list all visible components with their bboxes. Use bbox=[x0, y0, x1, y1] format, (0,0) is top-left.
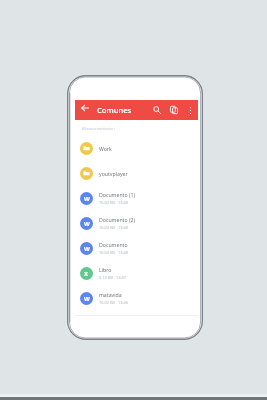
staticText: W bbox=[84, 245, 90, 253]
staticText: Almacenamiento › bbox=[82, 126, 116, 131]
staticText: Comunes bbox=[97, 105, 132, 115]
staticText: Documento (2) bbox=[99, 216, 136, 223]
staticText: 13:46 bbox=[118, 300, 128, 305]
staticText: 16.02 KB bbox=[99, 200, 115, 205]
button[interactable]: Search bbox=[149, 102, 165, 118]
staticText: Libro bbox=[99, 266, 112, 273]
button[interactable]: Navigate up bbox=[77, 100, 93, 116]
staticText: 13:48 bbox=[118, 200, 128, 205]
staticText: W bbox=[84, 195, 90, 203]
button[interactable]: W bbox=[75, 186, 198, 211]
button[interactable]: Select all bbox=[166, 102, 182, 118]
staticText: 16.02 KB bbox=[99, 250, 115, 255]
button[interactable]: More options bbox=[184, 104, 196, 116]
staticText: matavida bbox=[99, 291, 122, 298]
staticText: Work bbox=[99, 145, 112, 152]
staticText: 13:48 bbox=[118, 225, 128, 230]
staticText: Documento (1) bbox=[99, 191, 136, 198]
button[interactable]: W bbox=[75, 211, 198, 236]
button[interactable]: W bbox=[75, 236, 198, 261]
staticText: 13:47 bbox=[116, 275, 126, 280]
staticText: W bbox=[84, 220, 90, 228]
staticText: W bbox=[84, 295, 90, 303]
button[interactable]: Work bbox=[75, 136, 198, 161]
button[interactable]: youtvplayer bbox=[75, 161, 198, 186]
staticText: 9.12 KB bbox=[99, 275, 113, 280]
staticText: youtvplayer bbox=[99, 170, 128, 177]
staticText: 13:48 bbox=[118, 250, 128, 255]
staticText: 16.02 KB bbox=[99, 300, 115, 305]
button[interactable]: X bbox=[75, 261, 198, 286]
button[interactable]: W bbox=[75, 286, 198, 311]
staticText: X bbox=[84, 270, 89, 278]
staticText: Documento bbox=[99, 241, 128, 248]
staticText: 16.02 KB bbox=[99, 225, 115, 230]
